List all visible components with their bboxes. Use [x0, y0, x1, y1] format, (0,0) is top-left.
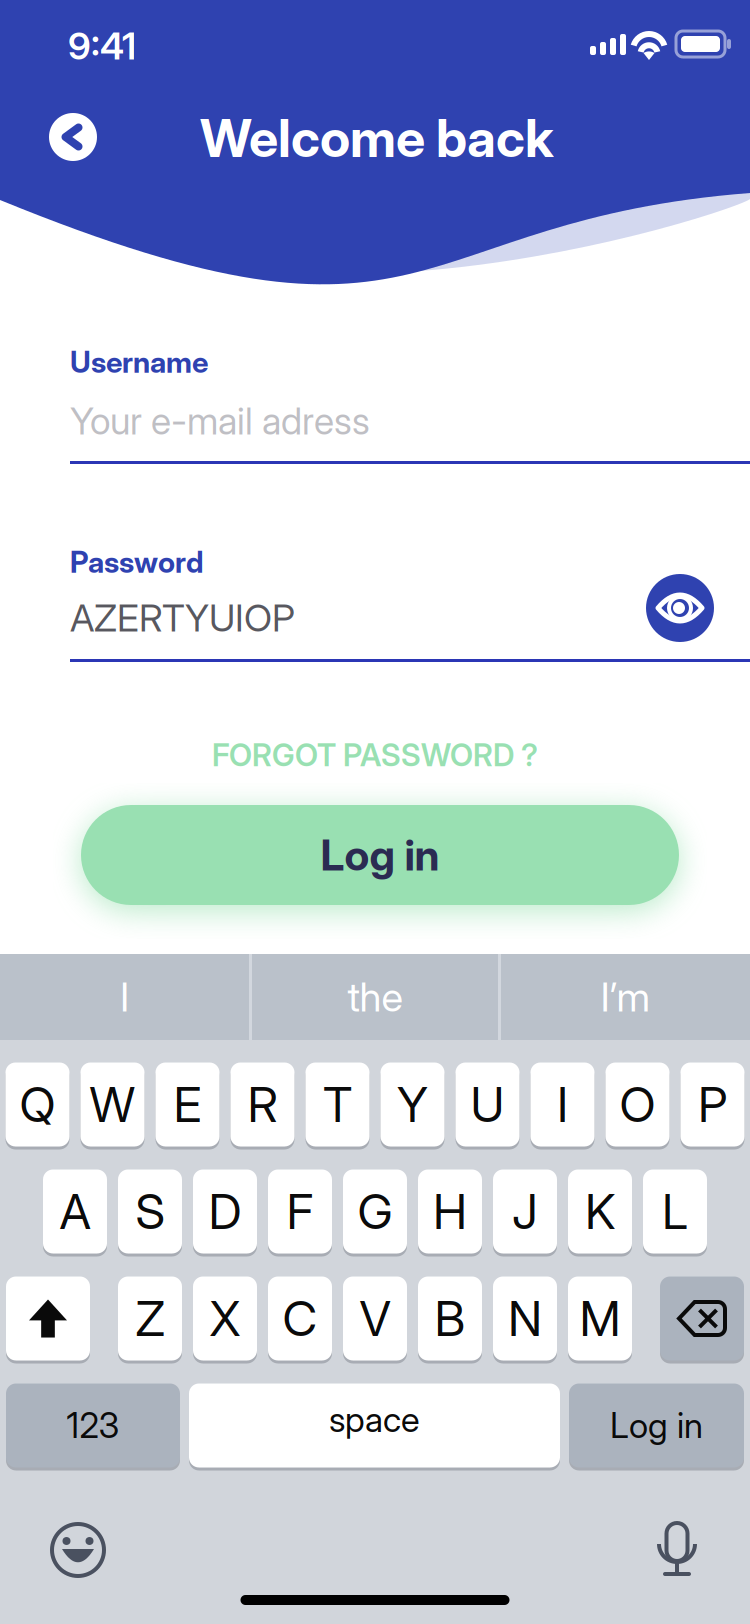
- button[interactable]: D: [193, 1168, 257, 1255]
- staticText: 9:41: [68, 23, 136, 69]
- button[interactable]: B: [418, 1275, 482, 1362]
- button[interactable]: S: [118, 1168, 182, 1255]
- button[interactable]: Show password: [646, 574, 714, 642]
- staticText: N: [508, 1289, 542, 1348]
- button[interactable]: I: [0, 954, 249, 1040]
- staticText: T: [323, 1075, 352, 1134]
- button[interactable]: X: [193, 1275, 257, 1362]
- button[interactable]: Y: [380, 1061, 444, 1148]
- staticText: FORGOT PASSWORD ?: [212, 736, 538, 773]
- button[interactable]: [6, 1275, 90, 1362]
- staticText: S: [135, 1182, 164, 1241]
- staticText: the: [347, 973, 402, 1021]
- button[interactable]: U: [455, 1061, 519, 1148]
- staticText: J: [512, 1182, 538, 1241]
- staticText: Q: [19, 1075, 55, 1134]
- button[interactable]: the: [252, 954, 498, 1040]
- staticText: K: [585, 1182, 615, 1241]
- button[interactable]: E: [155, 1061, 219, 1148]
- staticText: space: [329, 1398, 420, 1440]
- button[interactable]: [660, 1275, 744, 1362]
- staticText: M: [579, 1289, 620, 1348]
- staticText: Welcome back: [200, 106, 554, 169]
- staticText: V: [359, 1289, 390, 1348]
- staticText: I’m: [600, 973, 650, 1021]
- button[interactable]: R: [230, 1061, 294, 1148]
- button[interactable]: FORGOT PASSWORD ?: [0, 733, 750, 777]
- button[interactable]: Q: [5, 1061, 69, 1148]
- button[interactable]: Log in: [569, 1382, 744, 1469]
- staticText: D: [208, 1182, 241, 1241]
- staticText: R: [247, 1075, 277, 1134]
- staticText: AZERTYUIOP: [70, 595, 295, 641]
- staticText: I: [120, 973, 129, 1021]
- staticText: P: [698, 1075, 727, 1134]
- button[interactable]: L: [643, 1168, 707, 1255]
- staticText: E: [173, 1075, 201, 1134]
- staticText: H: [433, 1182, 467, 1241]
- button[interactable]: Back: [49, 113, 97, 161]
- staticText: U: [470, 1075, 504, 1134]
- staticText: L: [662, 1182, 688, 1241]
- button[interactable]: H: [418, 1168, 482, 1255]
- button[interactable]: O: [605, 1061, 669, 1148]
- button[interactable]: J: [493, 1168, 557, 1255]
- staticText: B: [434, 1289, 465, 1348]
- staticText: F: [286, 1182, 313, 1241]
- button[interactable]: W: [80, 1061, 144, 1148]
- staticText: A: [59, 1182, 90, 1241]
- staticText: Password: [70, 544, 204, 580]
- button[interactable]: K: [568, 1168, 632, 1255]
- button[interactable]: Z: [118, 1275, 182, 1362]
- button[interactable]: Log in: [81, 805, 679, 905]
- staticText: Username: [70, 344, 208, 380]
- button[interactable]: I’m: [501, 954, 750, 1040]
- button[interactable]: C: [268, 1275, 332, 1362]
- staticText: Y: [397, 1075, 428, 1134]
- button[interactable]: N: [493, 1275, 557, 1362]
- button[interactable]: Emoji: [50, 1522, 106, 1578]
- button[interactable]: A: [43, 1168, 107, 1255]
- button[interactable]: M: [568, 1275, 632, 1362]
- staticText: Z: [135, 1289, 164, 1348]
- button[interactable]: Dictate: [654, 1522, 700, 1578]
- staticText: 123: [66, 1404, 119, 1446]
- button[interactable]: V: [343, 1275, 407, 1362]
- button[interactable]: P: [680, 1061, 744, 1148]
- staticText: Your e-mail adress: [70, 398, 370, 444]
- button[interactable]: I: [530, 1061, 594, 1148]
- staticText: W: [89, 1075, 135, 1134]
- button[interactable]: G: [343, 1168, 407, 1255]
- button[interactable]: space: [189, 1382, 560, 1469]
- button[interactable]: F: [268, 1168, 332, 1255]
- staticText: Log in: [610, 1404, 703, 1446]
- button[interactable]: 123: [6, 1382, 180, 1469]
- staticText: Log in: [320, 829, 439, 881]
- button[interactable]: T: [305, 1061, 369, 1148]
- staticText: O: [619, 1075, 655, 1134]
- staticText: I: [557, 1075, 568, 1134]
- staticText: C: [282, 1289, 317, 1348]
- staticText: X: [209, 1289, 240, 1348]
- staticText: G: [357, 1182, 392, 1241]
